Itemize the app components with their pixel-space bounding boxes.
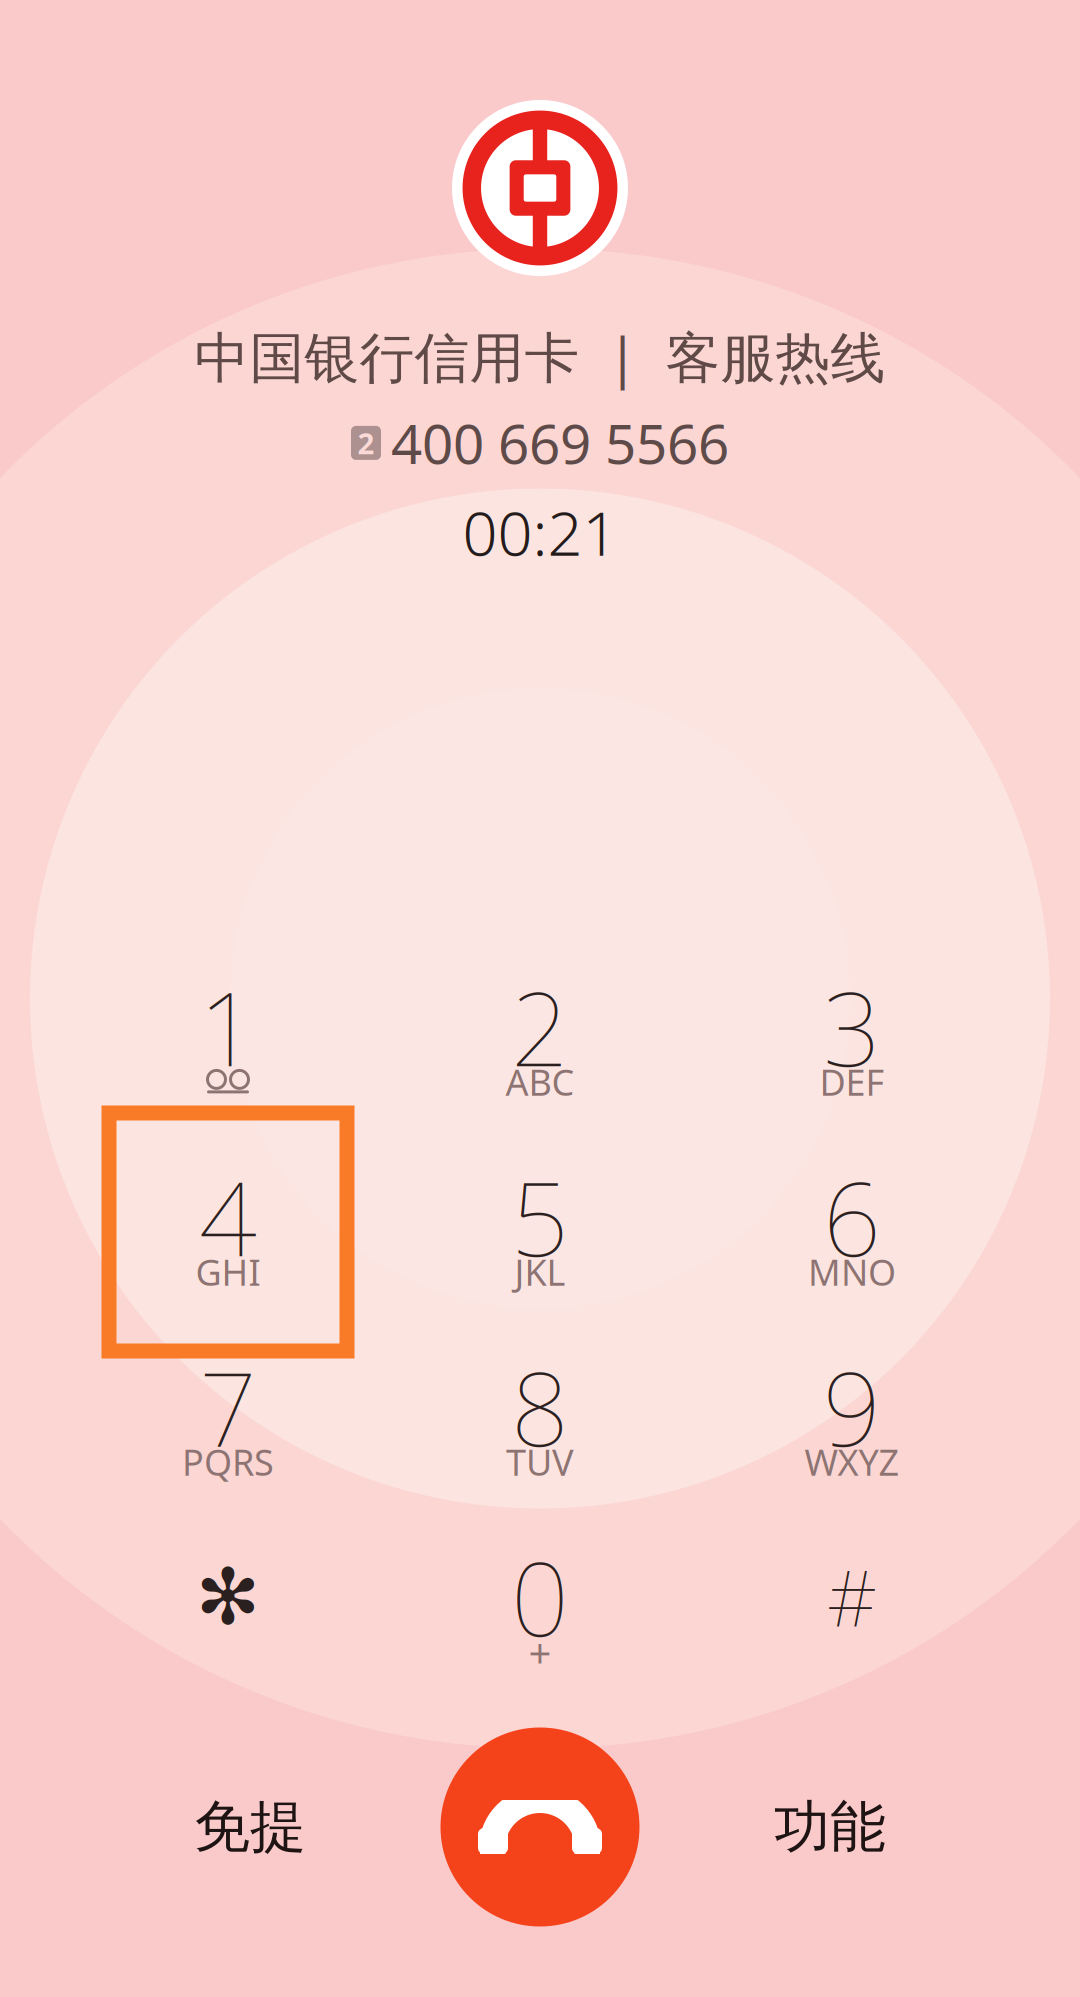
button[interactable]: End call bbox=[400, 1727, 680, 1927]
button[interactable]: 6 bbox=[702, 1157, 1002, 1307]
staticText: 8 bbox=[511, 1340, 569, 1474]
button[interactable]: 1 bbox=[78, 967, 378, 1117]
staticText: MNO bbox=[808, 1248, 896, 1296]
staticText: 中国银行信用卡 | 客服热线 bbox=[194, 320, 885, 393]
staticText: 00:21 bbox=[462, 491, 617, 573]
button[interactable]: 免提 bbox=[100, 1727, 400, 1927]
staticText: ABC bbox=[505, 1058, 574, 1106]
staticText: PQRS bbox=[182, 1438, 274, 1486]
button[interactable]: 功能 bbox=[680, 1727, 980, 1927]
button[interactable]: 8 bbox=[390, 1347, 690, 1497]
staticText: 9 bbox=[823, 1340, 881, 1474]
staticText: WXYZ bbox=[804, 1438, 899, 1486]
staticText: 3 bbox=[823, 960, 881, 1094]
staticText: 1 bbox=[199, 960, 257, 1094]
staticText: 免提 bbox=[194, 1793, 306, 1861]
button[interactable]: 3 bbox=[702, 967, 1002, 1117]
staticText: 2 bbox=[357, 423, 374, 462]
staticText: 功能 bbox=[774, 1793, 886, 1861]
staticText: 5 bbox=[511, 1150, 569, 1284]
staticText: 400 669 5566 bbox=[391, 407, 729, 479]
staticText: 4 bbox=[199, 1150, 257, 1284]
button[interactable]: # bbox=[702, 1537, 1002, 1687]
button[interactable]: 5 bbox=[390, 1157, 690, 1307]
staticText: DEF bbox=[819, 1058, 884, 1106]
button[interactable]: 4 bbox=[78, 1157, 378, 1307]
staticText: 2 bbox=[511, 960, 569, 1094]
staticText: JKL bbox=[514, 1248, 565, 1296]
button[interactable]: 2 bbox=[390, 967, 690, 1117]
staticText: ✻ bbox=[195, 1553, 260, 1641]
staticText: 0 bbox=[511, 1530, 569, 1664]
staticText: 6 bbox=[823, 1150, 881, 1284]
button[interactable]: ✻ bbox=[78, 1537, 378, 1687]
staticText: # bbox=[827, 1546, 877, 1648]
button[interactable]: 7 bbox=[78, 1347, 378, 1497]
staticText: 7 bbox=[199, 1340, 257, 1474]
staticText: TUV bbox=[506, 1438, 574, 1486]
staticText: + bbox=[528, 1625, 551, 1678]
button[interactable]: 0 bbox=[390, 1537, 690, 1687]
button[interactable]: 9 bbox=[702, 1347, 1002, 1497]
staticText: GHI bbox=[195, 1248, 260, 1296]
